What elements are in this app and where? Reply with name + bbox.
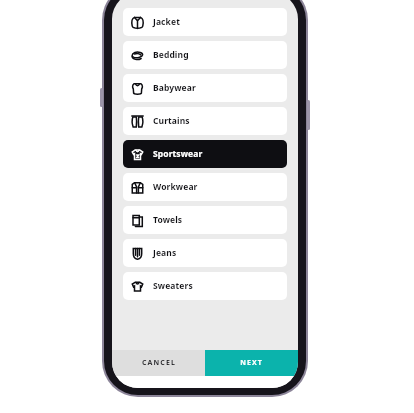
button[interactable]: Towels [123, 206, 287, 234]
button[interactable]: Workwear [123, 173, 287, 201]
button[interactable]: Sportswear [123, 140, 287, 168]
button[interactable]: Curtains [123, 107, 287, 135]
button[interactable]: Babywear [123, 74, 287, 102]
staticText: Jeans [153, 247, 177, 259]
button[interactable]: Bedding [123, 41, 287, 69]
staticText: Towels [153, 214, 183, 226]
staticText: Workwear [153, 181, 198, 193]
staticText: Curtains [153, 115, 190, 127]
button[interactable]: Sweaters [123, 272, 287, 300]
button[interactable]: CANCEL [112, 350, 205, 376]
button[interactable]: Jacket [123, 8, 287, 36]
button[interactable]: Jeans [123, 239, 287, 267]
button[interactable]: NEXT [205, 350, 298, 376]
staticText: Sweaters [153, 280, 193, 292]
staticText: Jacket [153, 16, 180, 28]
staticText: CANCEL [142, 358, 176, 368]
staticText: Bedding [153, 49, 189, 61]
staticText: Sportswear [153, 148, 203, 160]
staticText: Babywear [153, 82, 196, 94]
staticText: NEXT [240, 358, 263, 368]
